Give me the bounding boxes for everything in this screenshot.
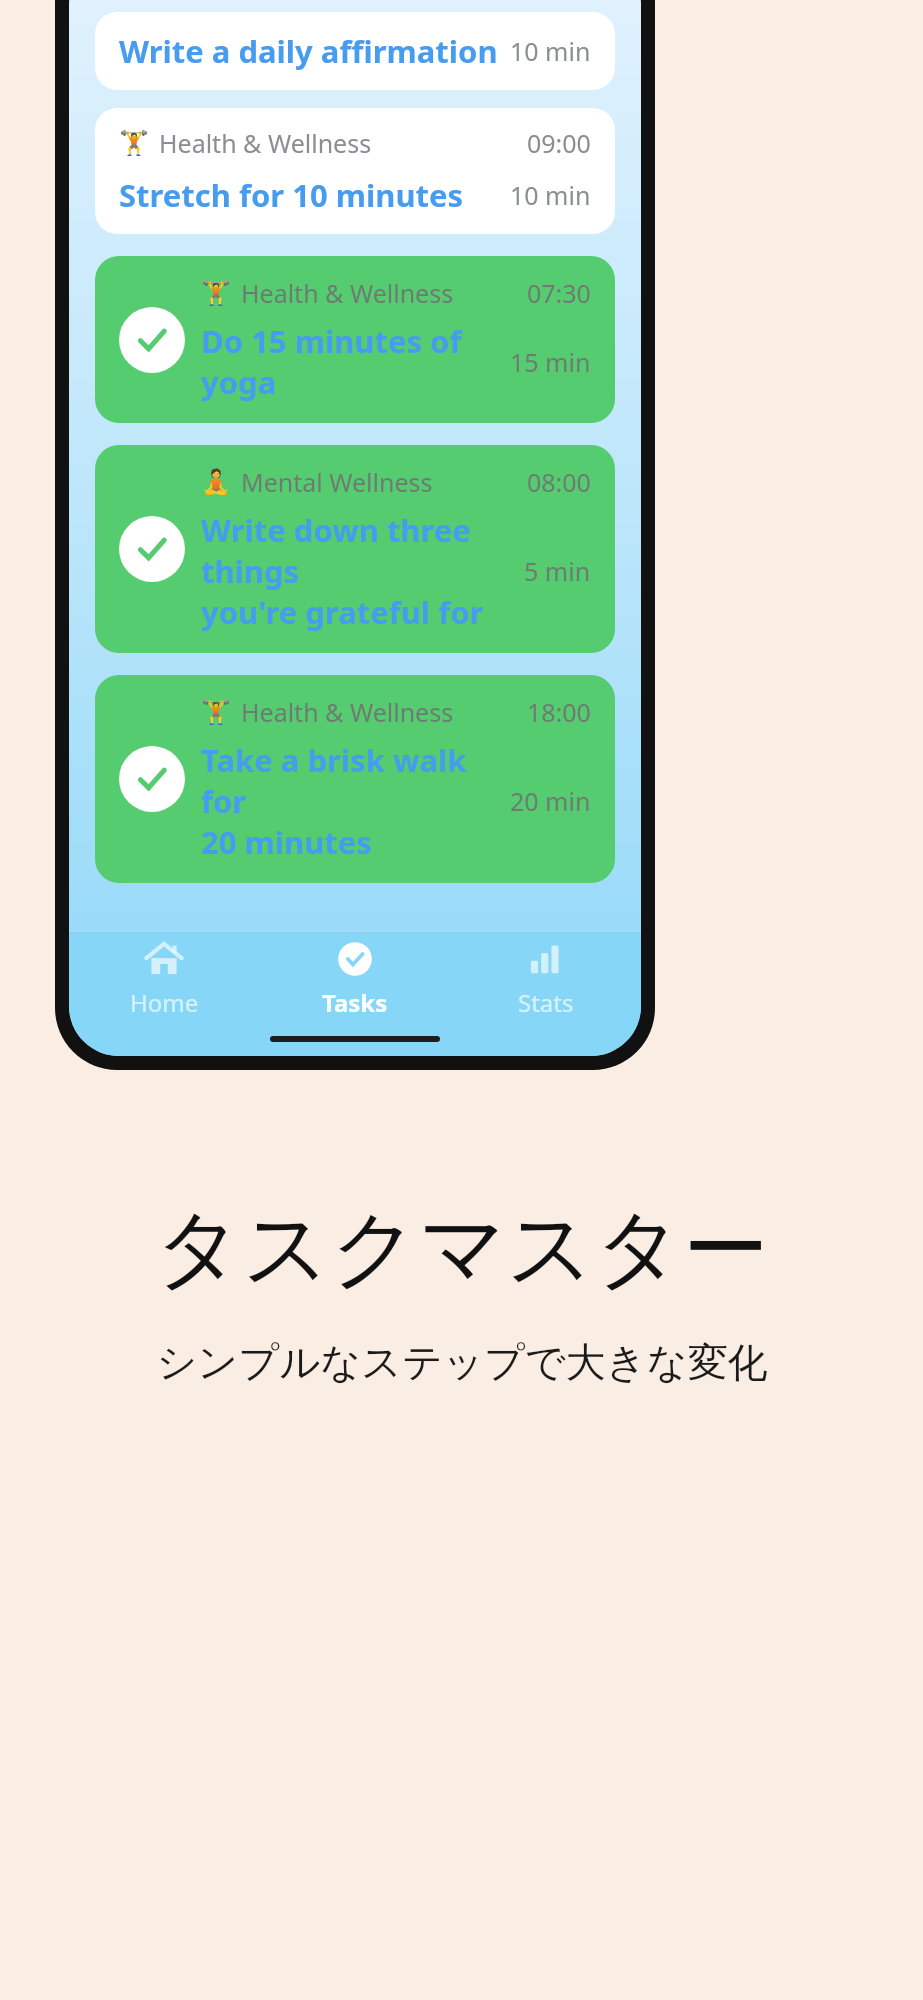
staticText: 08:00: [527, 465, 591, 499]
button[interactable]: Home: [69, 934, 259, 1022]
staticText: Health & Wellness: [241, 276, 454, 310]
staticText: Home: [130, 986, 199, 1019]
staticText: 🏋️: [119, 129, 149, 157]
staticText: Mental Wellness: [241, 465, 433, 499]
staticText: 5 min: [524, 554, 591, 588]
staticText: Stretch for 10 minutes: [119, 174, 510, 216]
button[interactable]: Stats: [450, 934, 641, 1022]
staticText: 09:00: [527, 126, 591, 160]
staticText: 07:30: [527, 276, 591, 310]
button[interactable]: 🏋️: [95, 108, 615, 234]
button[interactable]: 🏋️: [95, 256, 615, 423]
button[interactable]: 🏋️: [95, 675, 615, 883]
button[interactable]: Tasks: [259, 934, 450, 1022]
staticText: Health & Wellness: [241, 695, 454, 729]
staticText: Write down three things you're grateful …: [201, 509, 516, 633]
staticText: 18:00: [527, 695, 591, 729]
staticText: Tasks: [322, 986, 388, 1019]
staticText: シンプルなステップで大きな変化: [156, 1337, 768, 1387]
staticText: 🏋️: [201, 698, 231, 726]
button[interactable]: Write a daily affirmation: [95, 12, 615, 90]
staticText: 10 min: [510, 34, 591, 68]
staticText: Stats: [518, 986, 574, 1019]
staticText: 🏋️: [201, 279, 231, 307]
staticText: 15 min: [510, 345, 591, 379]
staticText: タスクマスター: [154, 1195, 769, 1303]
staticText: Take a brisk walk for 20 minutes: [201, 739, 502, 863]
staticText: 10 min: [510, 178, 591, 212]
staticText: 20 min: [510, 784, 591, 818]
staticText: Health & Wellness: [159, 126, 372, 160]
staticText: 🧘: [201, 468, 231, 496]
staticText: Do 15 minutes of yoga: [201, 320, 502, 403]
staticText: Write a daily affirmation: [119, 30, 510, 72]
button[interactable]: 🧘: [95, 445, 615, 653]
